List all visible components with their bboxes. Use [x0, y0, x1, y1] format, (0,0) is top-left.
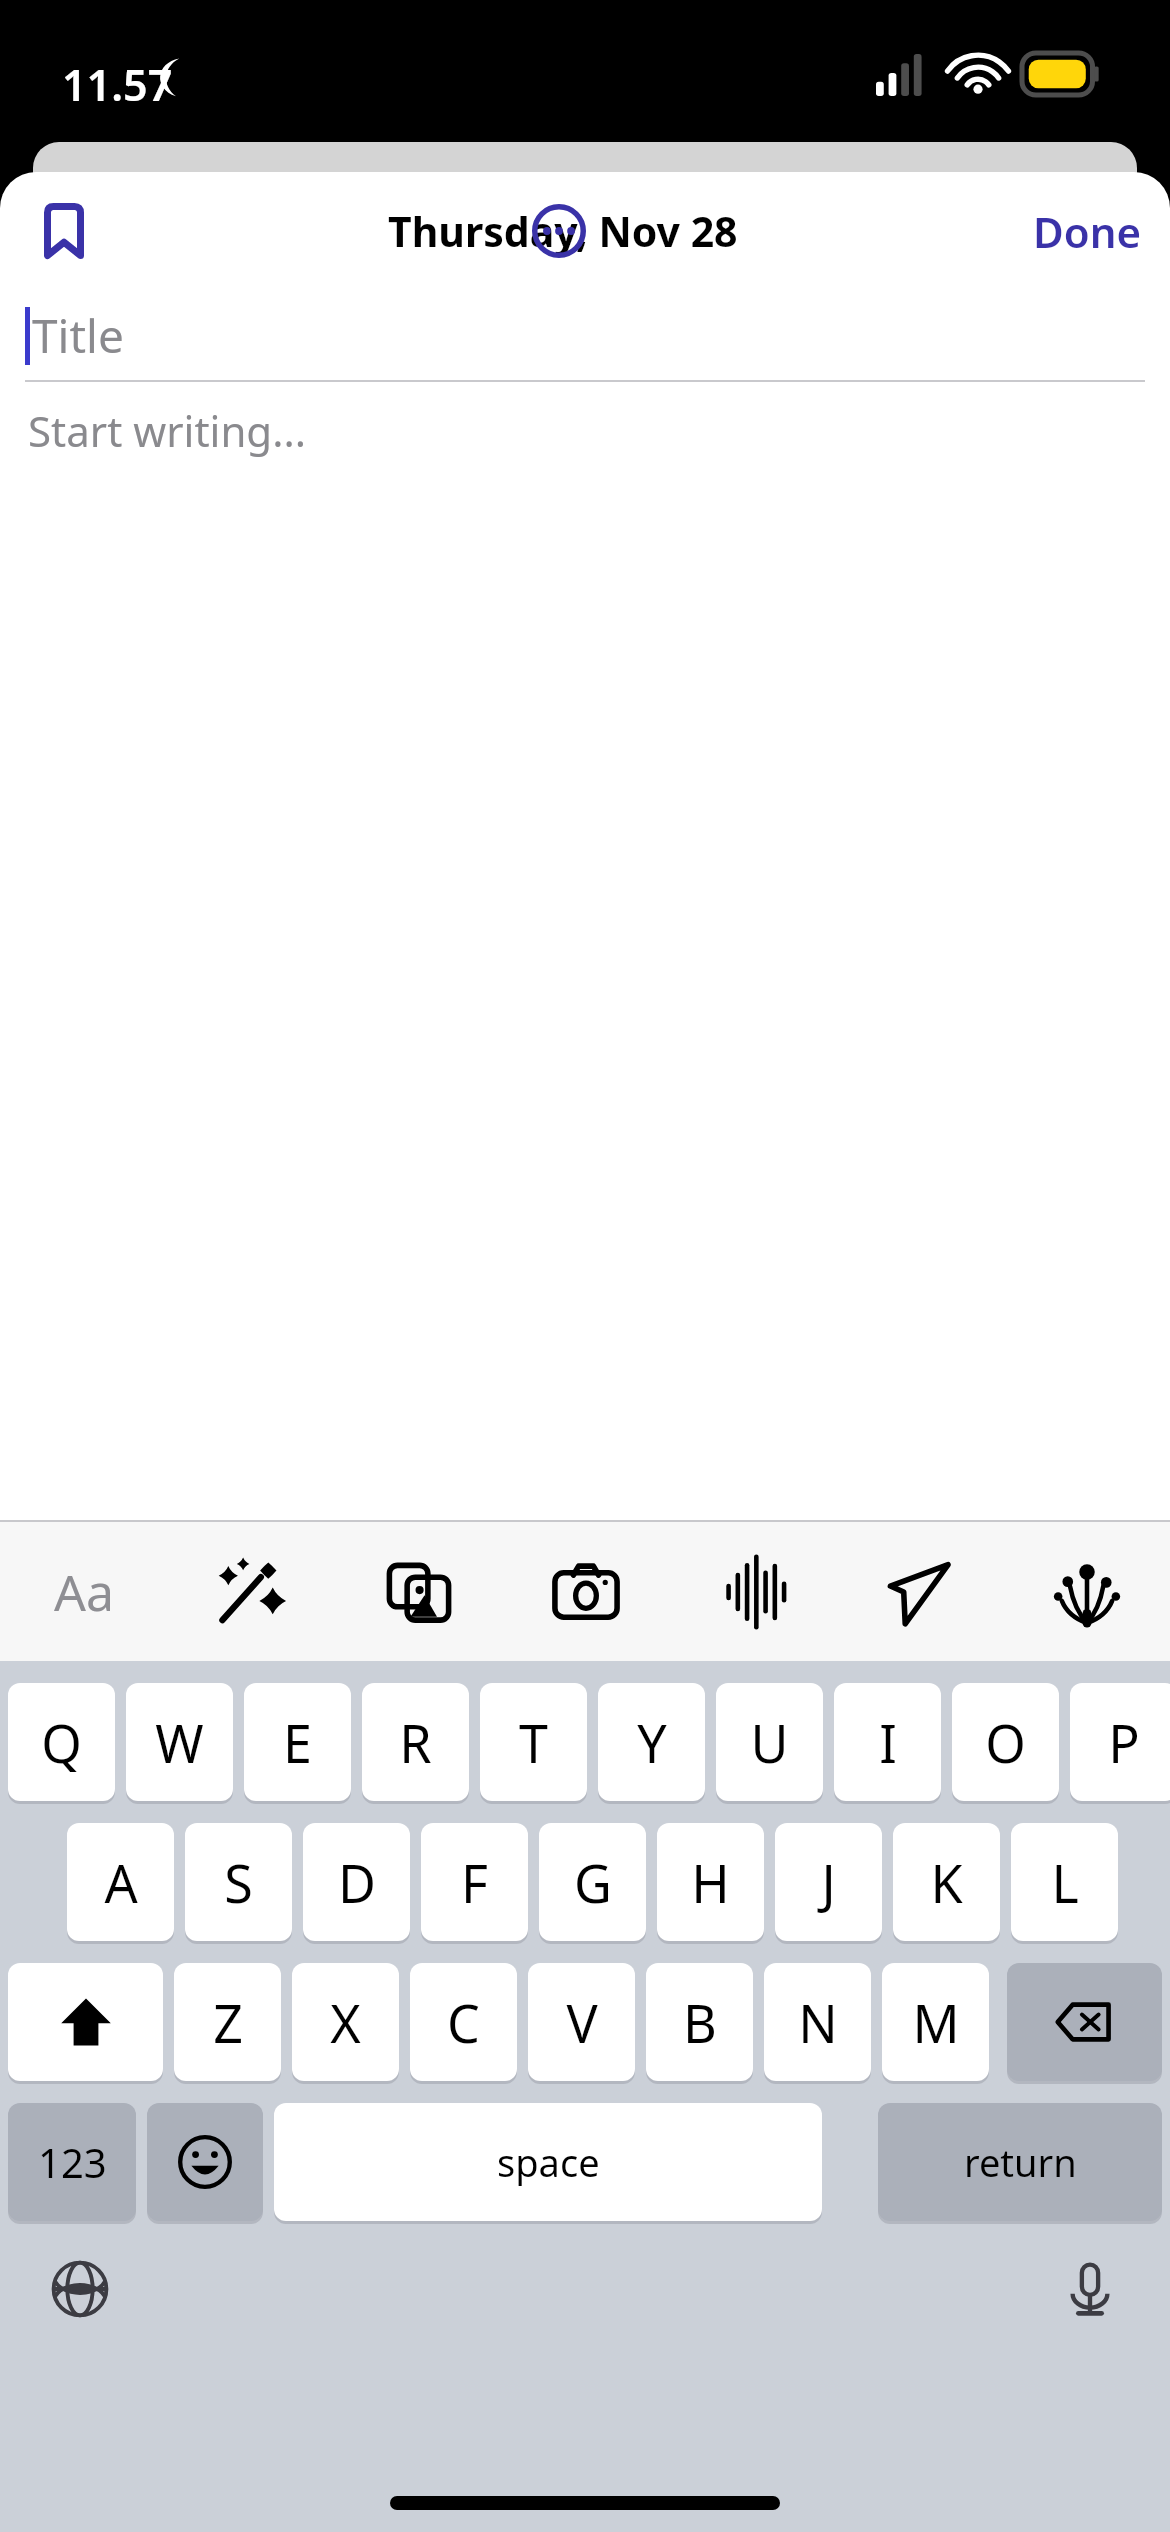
button[interactable]: A — [67, 1823, 174, 1941]
staticText: return — [964, 2136, 1077, 2188]
button[interactable]: I — [834, 1683, 941, 1801]
staticText: M — [912, 1987, 960, 2058]
button[interactable]: K — [893, 1823, 1000, 1941]
button[interactable]: O — [952, 1683, 1059, 1801]
button[interactable]: W — [126, 1683, 233, 1801]
button[interactable]: space — [274, 2103, 822, 2221]
button[interactable]: Q — [8, 1683, 115, 1801]
button[interactable]: Magic wand — [168, 1522, 335, 1661]
staticText: Thursday, Nov 28 — [388, 203, 738, 259]
button[interactable]: Z — [174, 1963, 281, 2081]
button[interactable]: Send — [836, 1522, 1003, 1661]
button[interactable]: Effects — [1003, 1522, 1170, 1661]
button[interactable]: M — [882, 1963, 989, 2081]
staticText: C — [447, 1987, 480, 2058]
staticText: X — [330, 1987, 361, 2058]
staticText: H — [691, 1847, 730, 1918]
button[interactable]: Camera — [502, 1522, 669, 1661]
button[interactable]: R — [362, 1683, 469, 1801]
staticText: B — [683, 1987, 717, 2058]
button[interactable]: Emoji — [147, 2103, 263, 2221]
button[interactable]: Switch keyboard — [36, 2245, 124, 2333]
button[interactable]: Done — [1019, 191, 1156, 272]
button[interactable]: V — [528, 1963, 635, 2081]
button[interactable]: return — [878, 2103, 1162, 2221]
staticText: Start writing... — [28, 402, 306, 459]
button[interactable]: Shift — [8, 1963, 163, 2081]
button[interactable]: Title — [0, 290, 1170, 380]
staticText: J — [821, 1847, 836, 1918]
staticText: O — [985, 1707, 1026, 1778]
staticText: 11.57 — [62, 55, 173, 114]
staticText: D — [338, 1847, 376, 1918]
button[interactable]: U — [716, 1683, 823, 1801]
button[interactable]: Dictation — [1046, 2245, 1134, 2333]
staticText: U — [750, 1707, 789, 1778]
button[interactable]: Y — [598, 1683, 705, 1801]
staticText: Aa — [54, 1558, 114, 1626]
staticText: Title — [32, 304, 124, 367]
button[interactable]: B — [646, 1963, 753, 2081]
staticText: S — [224, 1847, 253, 1918]
button[interactable]: X — [292, 1963, 399, 2081]
button[interactable]: Photos — [335, 1522, 502, 1661]
button[interactable]: D — [303, 1823, 410, 1941]
staticText: P — [1108, 1707, 1140, 1778]
button[interactable]: T — [480, 1683, 587, 1801]
button[interactable]: More options — [517, 189, 601, 273]
button[interactable]: S — [185, 1823, 292, 1941]
button[interactable]: H — [657, 1823, 764, 1941]
button[interactable]: C — [410, 1963, 517, 2081]
button[interactable]: J — [775, 1823, 882, 1941]
button[interactable]: E — [244, 1683, 351, 1801]
button[interactable]: Start writing... — [0, 382, 1170, 478]
button[interactable]: Bookmark — [22, 189, 106, 273]
button[interactable]: F — [421, 1823, 528, 1941]
staticText: Z — [213, 1987, 243, 2058]
staticText: N — [798, 1987, 838, 2058]
staticText: space — [497, 2136, 600, 2188]
button[interactable]: L — [1011, 1823, 1118, 1941]
button[interactable]: P — [1070, 1683, 1170, 1801]
staticText: R — [399, 1707, 432, 1778]
staticText: Q — [41, 1707, 82, 1778]
staticText: T — [519, 1707, 548, 1778]
staticText: V — [566, 1987, 598, 2058]
button[interactable]: Audio — [669, 1522, 836, 1661]
staticText: F — [461, 1847, 488, 1918]
staticText: W — [155, 1707, 204, 1778]
staticText: E — [283, 1707, 312, 1778]
button[interactable]: N — [764, 1963, 871, 2081]
button[interactable]: Backspace — [1007, 1963, 1162, 2081]
button[interactable]: Numbers — [8, 2103, 136, 2221]
staticText: I — [879, 1707, 897, 1778]
staticText: Done — [1033, 203, 1142, 260]
staticText: Y — [637, 1707, 667, 1778]
staticText: A — [104, 1847, 138, 1918]
button[interactable]: G — [539, 1823, 646, 1941]
staticText: K — [930, 1847, 963, 1918]
staticText: G — [574, 1847, 612, 1918]
button[interactable]: Text format — [0, 1522, 168, 1661]
staticText: 123 — [38, 2135, 107, 2189]
staticText: L — [1051, 1847, 1079, 1918]
